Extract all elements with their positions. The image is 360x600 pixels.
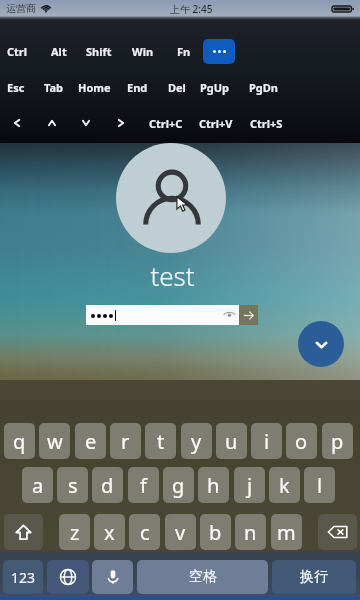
button[interactable]: g (163, 467, 194, 503)
staticText: m (277, 519, 296, 546)
staticText: Esc (7, 80, 25, 95)
staticText: 换行 (300, 568, 328, 586)
button[interactable]: i (251, 423, 282, 459)
button[interactable]: f (128, 467, 159, 503)
staticText: Home (78, 80, 111, 95)
staticText: r (121, 428, 130, 455)
staticText: 空格 (189, 568, 217, 586)
staticText: Ctrl (7, 44, 28, 59)
staticText: w (47, 428, 63, 455)
button[interactable]: y (181, 423, 212, 459)
staticText: e (85, 428, 97, 455)
button[interactable]: Switch keyboard (47, 560, 89, 594)
button[interactable]: PgDn (240, 72, 286, 102)
button[interactable]: Down (69, 108, 103, 138)
button[interactable]: p (322, 423, 353, 459)
button[interactable]: z (59, 514, 90, 550)
staticText: c (140, 519, 150, 546)
staticText: x (104, 519, 115, 546)
button[interactable]: Ctrl+S (240, 108, 292, 138)
button[interactable]: r (110, 423, 141, 459)
button[interactable]: 123 (3, 560, 43, 594)
button[interactable]: Submit password (239, 305, 258, 325)
staticText: End (127, 80, 148, 95)
staticText: g (172, 472, 185, 499)
staticText: Shift (86, 44, 112, 59)
button[interactable]: h (198, 467, 229, 503)
staticText: 运营商 (6, 2, 36, 15)
button[interactable]: PgUp (192, 72, 238, 102)
button[interactable]: Alt (38, 36, 80, 66)
staticText: Ctrl+C (149, 116, 183, 131)
button[interactable]: k (269, 467, 300, 503)
button[interactable]: Home (70, 72, 118, 102)
staticText: k (279, 472, 290, 499)
staticText: p (331, 428, 344, 455)
button[interactable]: l (304, 467, 335, 503)
staticText: Ctrl+S (250, 116, 283, 131)
button[interactable]: Left (0, 108, 34, 138)
button[interactable]: u (216, 423, 247, 459)
staticText: q (13, 428, 26, 455)
staticText: o (295, 428, 308, 455)
staticText: s (68, 472, 78, 499)
staticText: Win (132, 44, 154, 59)
staticText: a (32, 472, 44, 499)
staticText: PgUp (200, 80, 230, 95)
button[interactable]: j (234, 467, 265, 503)
button[interactable]: t (145, 423, 176, 459)
button[interactable]: v (165, 514, 196, 550)
staticText: 上午 2:45 (170, 2, 213, 16)
button[interactable]: a (22, 467, 53, 503)
button[interactable]: Right (104, 108, 138, 138)
button[interactable]: Ctrl (0, 36, 38, 66)
staticText: i (264, 428, 270, 455)
staticText: b (209, 519, 222, 546)
button[interactable]: d (92, 467, 123, 503)
button[interactable]: w (39, 423, 70, 459)
staticText: h (207, 472, 220, 499)
staticText: u (225, 428, 238, 455)
staticText: test (150, 258, 195, 293)
button[interactable]: Dictate (92, 560, 133, 594)
staticText: PgDn (249, 80, 278, 95)
staticText: t (157, 428, 165, 455)
staticText: 123 (11, 568, 36, 587)
staticText: d (101, 472, 114, 499)
staticText: l (317, 472, 323, 499)
button[interactable]: Tab (33, 72, 75, 102)
button[interactable]: m (271, 514, 302, 550)
button[interactable]: Win (122, 36, 164, 66)
button[interactable]: b (200, 514, 231, 550)
staticText: j (247, 472, 253, 499)
button[interactable]: o (286, 423, 317, 459)
staticText: n (244, 519, 257, 546)
button[interactable]: Shift (4, 514, 43, 550)
button[interactable]: Backspace (318, 514, 357, 550)
staticText: Ctrl+V (199, 116, 233, 131)
button[interactable]: Del (156, 72, 198, 102)
staticText: Del (168, 80, 186, 95)
button[interactable]: 换行 (272, 560, 356, 594)
button[interactable]: n (235, 514, 266, 550)
button[interactable]: Ctrl+V (190, 108, 242, 138)
staticText: Alt (51, 44, 67, 59)
button[interactable]: x (94, 514, 125, 550)
button[interactable]: Esc (0, 72, 37, 102)
staticText: Fn (177, 44, 191, 59)
button[interactable]: c (129, 514, 160, 550)
button[interactable]: e (75, 423, 106, 459)
button[interactable]: 空格 (137, 560, 268, 594)
button[interactable]: s (57, 467, 88, 503)
button[interactable]: Ctrl+C (140, 108, 192, 138)
button[interactable]: End (116, 72, 158, 102)
button[interactable]: q (4, 423, 35, 459)
button[interactable]: Shift (78, 36, 120, 66)
staticText: z (70, 519, 80, 546)
staticText: f (140, 472, 147, 499)
button[interactable]: Up (35, 108, 69, 138)
button[interactable]: Hide keyboard (298, 321, 344, 367)
staticText: v (175, 519, 186, 546)
button[interactable]: More shortcuts (203, 39, 235, 64)
button[interactable]: Fn (168, 36, 200, 66)
